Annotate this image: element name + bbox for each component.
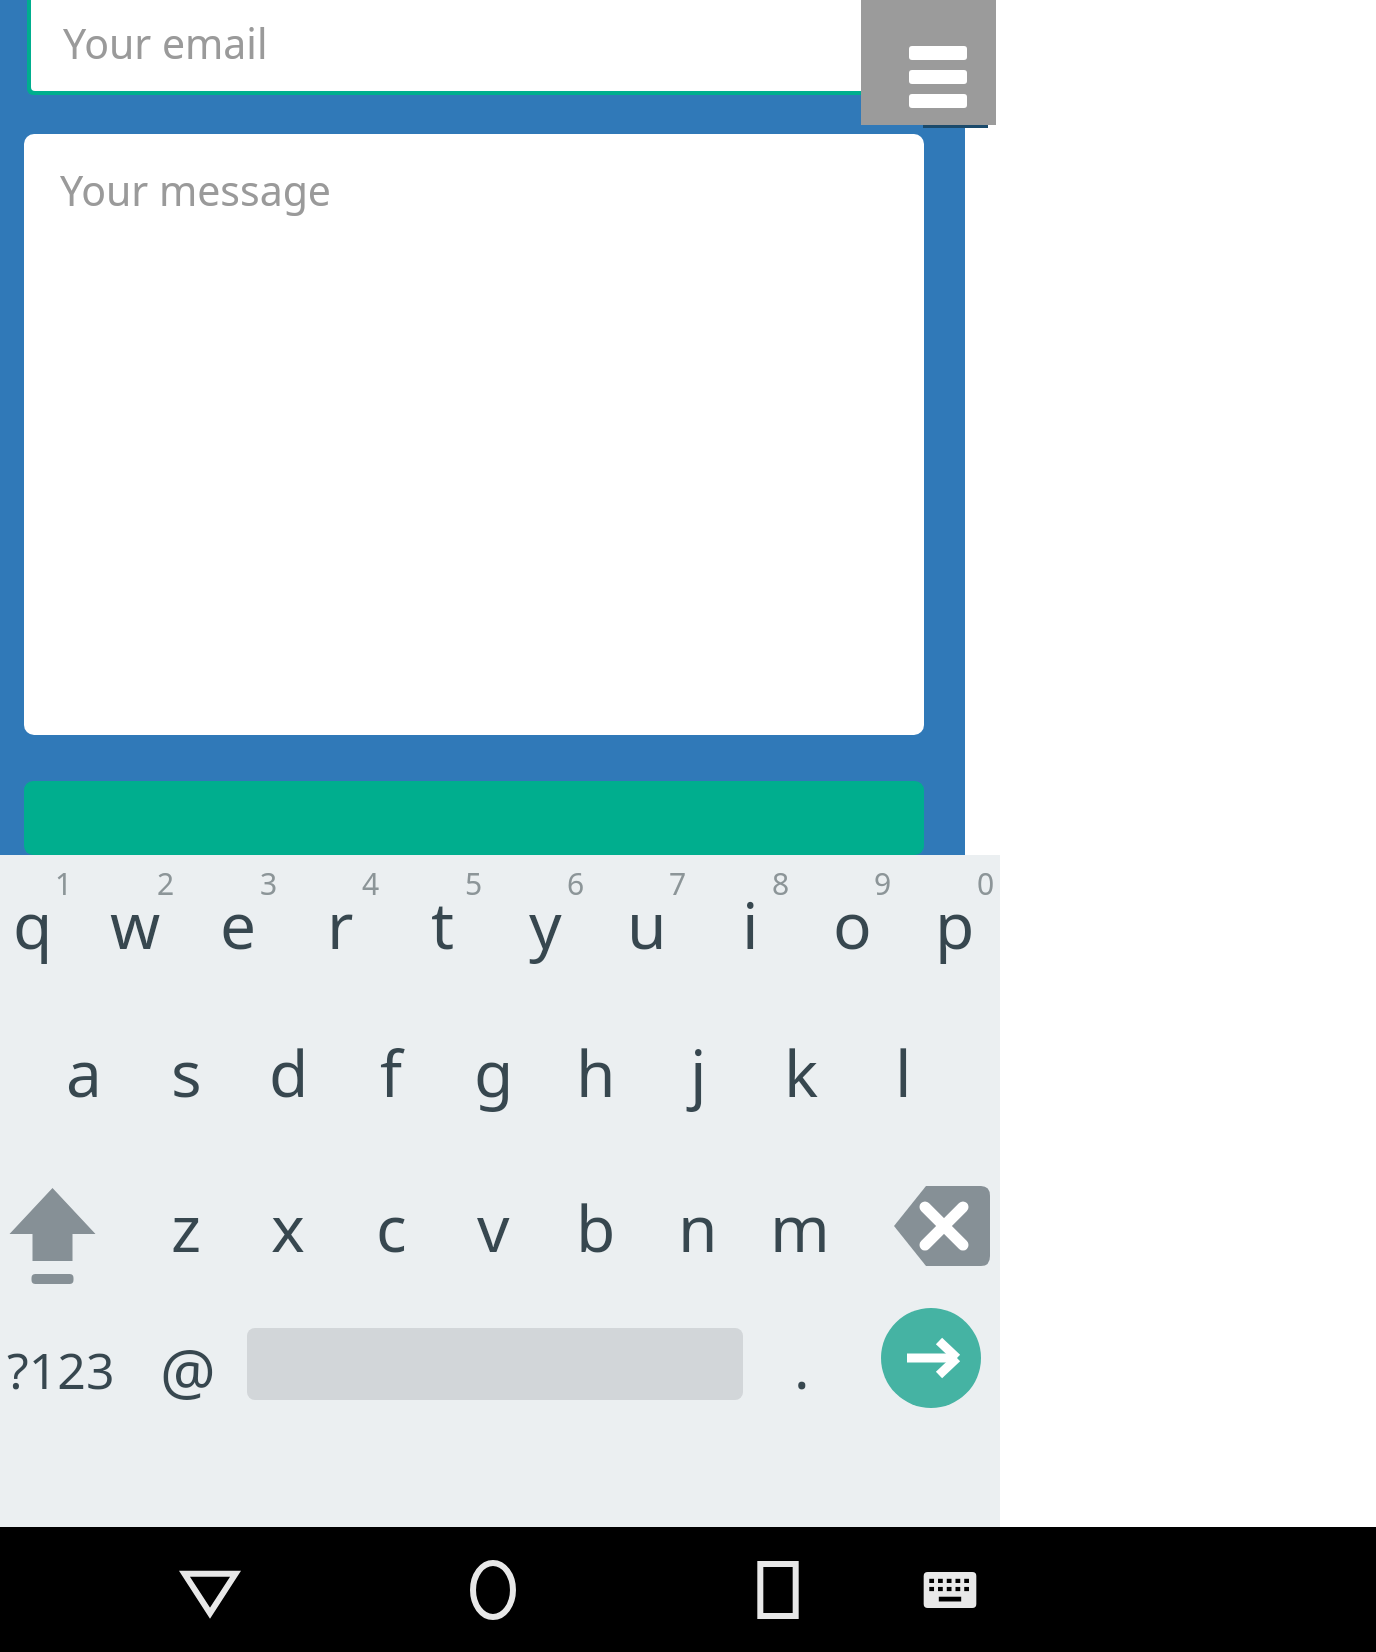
staticText: l: [895, 1029, 912, 1116]
button[interactable]: h: [546, 1003, 646, 1143]
button[interactable]: b: [546, 1158, 646, 1298]
button[interactable]: v: [443, 1158, 543, 1298]
staticText: s: [171, 1029, 202, 1116]
staticText: p: [935, 881, 975, 968]
button[interactable]: .: [752, 1295, 852, 1445]
button[interactable]: x: [238, 1158, 338, 1298]
staticText: b: [576, 1184, 616, 1271]
button[interactable]: Shift: [0, 1158, 105, 1298]
button[interactable]: k: [751, 1003, 851, 1143]
staticText: Your message: [60, 162, 331, 218]
staticText: 2: [157, 863, 175, 904]
staticText: x: [271, 1184, 305, 1271]
staticText: a: [66, 1029, 102, 1116]
button[interactable]: 5: [393, 855, 493, 995]
staticText: t: [431, 881, 455, 968]
staticText: z: [171, 1184, 202, 1271]
staticText: @: [160, 1328, 216, 1412]
button[interactable]: Home: [438, 1527, 548, 1652]
button[interactable]: n: [648, 1158, 748, 1298]
staticText: e: [220, 881, 257, 968]
button[interactable]: 0: [905, 855, 1005, 995]
staticText: r: [327, 881, 354, 968]
button[interactable]: m: [750, 1158, 850, 1298]
button[interactable]: f: [341, 1003, 441, 1143]
staticText: 9: [874, 863, 892, 904]
staticText: 0: [977, 863, 995, 904]
button[interactable]: 6: [495, 855, 595, 995]
staticText: 6: [567, 863, 585, 904]
button[interactable]: c: [341, 1158, 441, 1298]
button[interactable]: Recent apps: [723, 1527, 833, 1652]
staticText: 3: [260, 863, 278, 904]
staticText: i: [742, 881, 759, 968]
staticText: q: [13, 881, 53, 968]
button[interactable]: ?123: [0, 1295, 122, 1445]
button[interactable]: Your email: [27, 0, 924, 95]
button[interactable]: Send: [881, 1308, 981, 1408]
button[interactable]: 8: [700, 855, 800, 995]
staticText: j: [690, 1029, 707, 1116]
button[interactable]: Your message: [24, 134, 924, 735]
staticText: o: [833, 881, 872, 968]
button[interactable]: 7: [597, 855, 697, 995]
button[interactable]: d: [239, 1003, 339, 1143]
staticText: y: [529, 881, 562, 968]
staticText: c: [376, 1184, 407, 1271]
staticText: 8: [772, 863, 790, 904]
button[interactable]: s: [136, 1003, 236, 1143]
button[interactable]: Backspace: [880, 1158, 1000, 1298]
button[interactable]: 3: [188, 855, 288, 995]
staticText: u: [627, 881, 667, 968]
button[interactable]: @: [130, 1295, 245, 1445]
button[interactable]: z: [136, 1158, 236, 1298]
staticText: n: [678, 1184, 718, 1271]
staticText: ?123: [7, 1336, 115, 1404]
button[interactable]: 2: [85, 855, 185, 995]
staticText: v: [477, 1184, 510, 1271]
button[interactable]: a: [34, 1003, 134, 1143]
button[interactable]: j: [648, 1003, 748, 1143]
staticText: g: [474, 1029, 514, 1116]
staticText: 5: [465, 863, 483, 904]
button[interactable]: 4: [290, 855, 390, 995]
staticText: w: [110, 881, 161, 968]
staticText: h: [576, 1029, 616, 1116]
staticText: d: [269, 1029, 309, 1116]
staticText: 1: [55, 863, 73, 904]
staticText: k: [784, 1029, 819, 1116]
button[interactable]: Menu: [861, 0, 996, 125]
button[interactable]: 9: [802, 855, 902, 995]
button[interactable]: g: [444, 1003, 544, 1143]
staticText: Your email: [63, 15, 268, 71]
button[interactable]: Hide keyboard: [895, 1527, 1005, 1652]
button[interactable]: 1: [0, 855, 83, 995]
button[interactable]: Back: [155, 1527, 265, 1652]
staticText: .: [794, 1327, 810, 1406]
staticText: 4: [362, 863, 380, 904]
staticText: m: [770, 1184, 830, 1271]
staticText: 7: [669, 863, 687, 904]
button[interactable]: l: [853, 1003, 953, 1143]
staticText: f: [380, 1029, 403, 1116]
